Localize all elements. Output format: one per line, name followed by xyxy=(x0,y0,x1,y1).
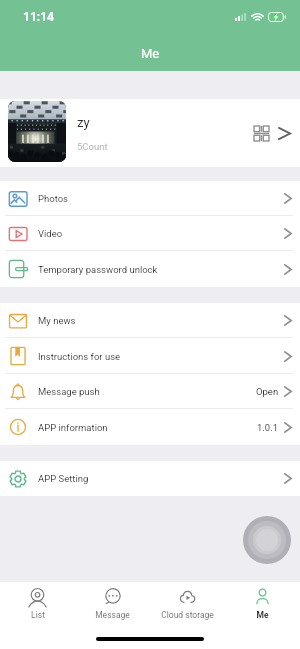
button[interactable]: Message xyxy=(75,582,150,628)
button[interactable]: My news xyxy=(0,303,300,338)
button[interactable]: Assistive touch xyxy=(243,516,291,564)
button[interactable]: zy xyxy=(0,99,300,167)
button[interactable]: Temporary password unlock xyxy=(0,251,300,287)
button[interactable]: APP information xyxy=(0,409,300,445)
staticText: Cloud storage xyxy=(161,610,214,620)
staticText: Instructions for use xyxy=(38,351,121,362)
button[interactable]: List xyxy=(0,582,75,628)
button[interactable]: Video xyxy=(0,216,300,251)
button[interactable]: Me xyxy=(225,582,300,628)
staticText: Temporary password unlock xyxy=(38,264,158,275)
staticText: zy xyxy=(77,115,90,130)
button[interactable]: Instructions for use xyxy=(0,338,300,374)
staticText: 5Count xyxy=(77,141,108,152)
button[interactable]: Message push xyxy=(0,374,300,409)
staticText: My news xyxy=(38,315,76,326)
staticText: Open xyxy=(256,386,279,397)
staticText: 1.0.1 xyxy=(257,422,279,433)
button[interactable]: Scan QR code xyxy=(254,126,269,141)
staticText: Me xyxy=(256,610,269,620)
button[interactable]: Cloud storage xyxy=(150,582,225,628)
staticText: Message xyxy=(95,610,130,620)
staticText: List xyxy=(31,610,45,620)
staticText: 11:14 xyxy=(23,10,54,24)
button[interactable]: Photos xyxy=(0,181,300,216)
staticText: APP information xyxy=(38,422,108,433)
staticText: Me xyxy=(141,46,160,61)
staticText: Photos xyxy=(38,193,68,204)
staticText: APP Setting xyxy=(38,473,89,484)
staticText: Message push xyxy=(38,386,100,397)
button[interactable]: APP Setting xyxy=(0,461,300,496)
staticText: Video xyxy=(38,228,63,239)
